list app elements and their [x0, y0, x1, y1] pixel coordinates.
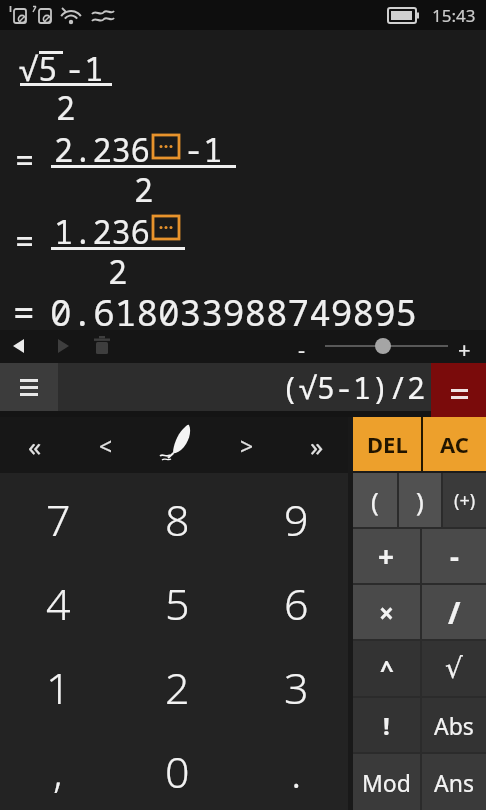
staticText: 2.236 — [54, 128, 150, 166]
staticText: 6 — [284, 574, 309, 633]
button[interactable]: < — [86, 428, 126, 462]
button[interactable]: 1 — [8, 655, 108, 719]
button[interactable]: > — [227, 428, 267, 462]
staticText: × — [379, 595, 394, 630]
staticText: √5 — [19, 47, 58, 85]
button[interactable]: - — [290, 334, 314, 358]
staticText: (√5-1)/2 — [281, 367, 425, 408]
button[interactable]: 5 — [127, 571, 227, 635]
staticText: -1 — [65, 47, 104, 85]
button[interactable]: 7 — [8, 487, 108, 551]
button[interactable]: AC — [423, 417, 486, 471]
staticText: - — [450, 537, 459, 575]
button[interactable]: + — [353, 529, 420, 583]
button[interactable]: Mod — [353, 754, 420, 810]
staticText: 0.618033988749895 — [50, 288, 418, 328]
staticText: ! — [383, 709, 390, 742]
button[interactable]: - — [422, 529, 486, 583]
staticText: 4 — [46, 574, 71, 633]
staticText: 5 — [165, 574, 190, 633]
button[interactable]: ^ — [353, 641, 420, 696]
staticText: < — [99, 430, 113, 461]
staticText: 0 — [165, 742, 190, 801]
staticText: = — [13, 288, 35, 328]
staticText: Mod — [362, 767, 411, 798]
staticText: -1 — [184, 128, 223, 166]
button[interactable]: DEL — [353, 417, 421, 471]
button[interactable]: . — [246, 739, 346, 803]
staticText: « — [28, 428, 42, 462]
button[interactable]: Abs — [422, 698, 486, 752]
staticText: (+) — [454, 488, 476, 513]
staticText: Abs — [434, 710, 474, 741]
button[interactable]: (+) — [443, 473, 486, 527]
button[interactable] — [50, 334, 74, 358]
button[interactable]: + — [452, 334, 476, 358]
button[interactable]: √ — [422, 641, 486, 696]
button[interactable]: 3 — [246, 655, 346, 719]
button[interactable]: , — [8, 739, 108, 803]
staticText: / — [448, 592, 461, 633]
staticText: = — [15, 138, 35, 176]
staticText: Ans — [434, 767, 474, 798]
button[interactable] — [156, 423, 198, 465]
button[interactable]: 2 — [127, 655, 227, 719]
button[interactable] — [0, 363, 58, 411]
staticText: ( — [371, 483, 379, 518]
button[interactable]: Ans — [422, 754, 486, 810]
button[interactable]: 6 — [246, 571, 346, 635]
staticText: 9 — [284, 490, 309, 549]
staticText: DEL — [367, 429, 408, 459]
staticText: 2 — [56, 86, 76, 124]
button[interactable] — [8, 334, 32, 358]
staticText: . — [291, 742, 302, 801]
staticText: 1.236 — [54, 210, 150, 248]
staticText: 15:43 — [432, 4, 476, 26]
button[interactable]: × — [353, 585, 420, 639]
button[interactable]: ) — [399, 473, 441, 527]
staticText: 7 — [46, 490, 71, 549]
button[interactable] — [90, 334, 114, 358]
staticText: + — [378, 537, 395, 575]
staticText: ^ — [380, 652, 394, 685]
staticText: 3 — [284, 658, 309, 717]
staticText: > — [240, 430, 254, 461]
button[interactable]: / — [422, 585, 486, 639]
button[interactable] — [375, 338, 391, 354]
staticText: 2 — [134, 168, 154, 206]
staticText: 2 — [165, 658, 190, 717]
staticText: = — [15, 219, 35, 257]
button[interactable]: ! — [353, 698, 420, 752]
button[interactable]: 9 — [246, 487, 346, 551]
staticText: » — [310, 428, 324, 462]
button[interactable]: ( — [353, 473, 397, 527]
staticText: - — [298, 334, 306, 358]
button[interactable]: « — [15, 428, 55, 462]
staticText: AC — [440, 429, 469, 459]
staticText: , — [53, 742, 63, 801]
staticText: 2 — [108, 250, 128, 288]
staticText: 8 — [165, 490, 190, 549]
staticText: + — [458, 334, 471, 358]
staticText: 1 — [46, 658, 71, 717]
button[interactable] — [431, 363, 486, 417]
staticText: ) — [416, 483, 424, 518]
button[interactable]: » — [297, 428, 337, 462]
staticText: √ — [445, 652, 463, 685]
button[interactable]: 8 — [127, 487, 227, 551]
button[interactable]: 0 — [127, 739, 227, 803]
button[interactable]: 4 — [8, 571, 108, 635]
